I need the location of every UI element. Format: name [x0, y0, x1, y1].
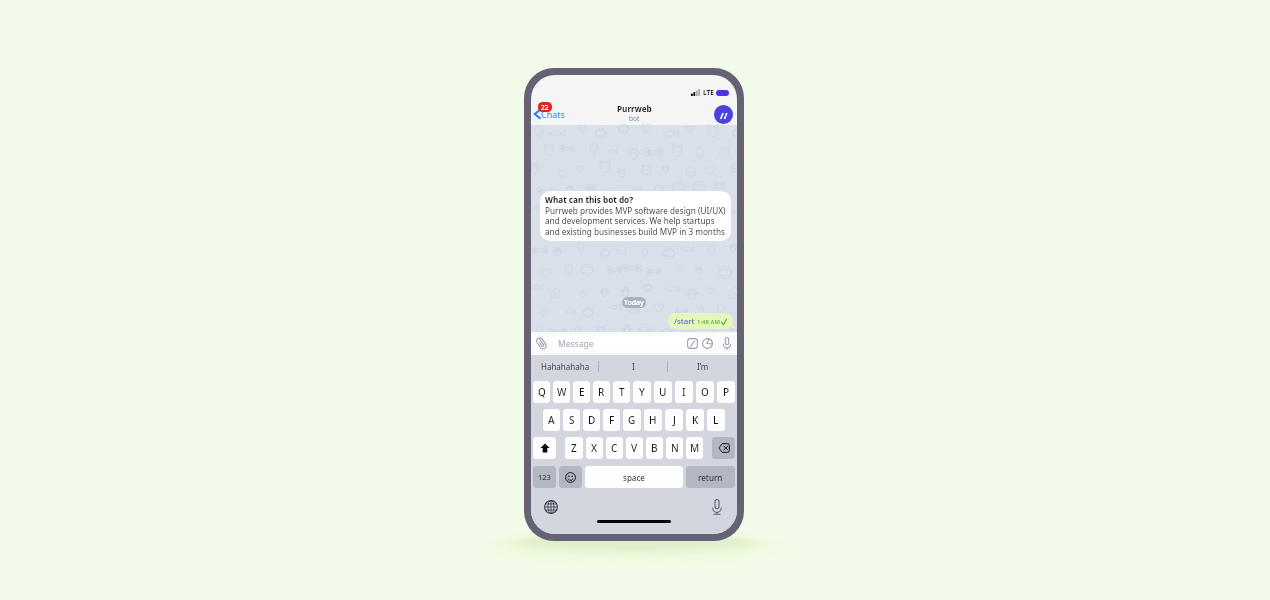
staticText: 22	[541, 103, 549, 112]
staticText: L	[713, 413, 719, 427]
staticText: /start	[674, 316, 695, 327]
staticText: Q	[538, 385, 546, 399]
button[interactable]: C	[606, 437, 623, 459]
button[interactable]: 123	[533, 466, 556, 488]
button[interactable]: Stickers	[702, 338, 713, 349]
button[interactable]: Backspace	[712, 437, 735, 459]
button[interactable]: N	[666, 437, 683, 459]
staticText: space	[623, 472, 645, 483]
button[interactable]: S	[563, 409, 580, 431]
button[interactable]: O	[696, 381, 714, 403]
staticText: Y	[639, 385, 645, 399]
staticText: N	[671, 441, 679, 455]
button[interactable]: U	[654, 381, 672, 403]
staticText: I	[632, 361, 635, 372]
button[interactable]: Hahahahaha	[531, 355, 599, 378]
staticText: Today	[624, 298, 644, 308]
staticText: 1:48 AM	[697, 318, 720, 326]
staticText: A	[548, 413, 555, 427]
button[interactable]: V	[626, 437, 643, 459]
button[interactable]: R	[593, 381, 610, 403]
button[interactable]: X	[586, 437, 603, 459]
staticText: P	[723, 385, 730, 399]
staticText: O	[701, 385, 709, 399]
button[interactable]: Chats	[534, 108, 565, 120]
button[interactable]: Shift	[533, 437, 556, 459]
staticText: Message	[558, 338, 594, 350]
button[interactable]: K	[686, 409, 704, 431]
staticText: K	[692, 413, 699, 427]
button[interactable]: D	[583, 409, 600, 431]
staticText: J	[673, 413, 676, 427]
staticText: E	[579, 385, 585, 399]
button[interactable]: I’m	[668, 355, 737, 378]
staticText: //	[720, 109, 728, 121]
button[interactable]: Emoji	[559, 466, 582, 488]
staticText: W	[557, 385, 567, 399]
staticText: What can this bot do?	[545, 194, 634, 205]
staticText: 123	[538, 472, 551, 482]
button[interactable]: M	[686, 437, 703, 459]
staticText: I	[682, 385, 686, 399]
button[interactable]: Q	[533, 381, 550, 403]
staticText: M	[690, 441, 700, 455]
staticText: Chats	[541, 108, 565, 120]
staticText: T	[619, 385, 625, 399]
button[interactable]: return	[686, 466, 735, 488]
button[interactable]: F	[603, 409, 620, 431]
button[interactable]: A	[543, 409, 560, 431]
button[interactable]: L	[707, 409, 725, 431]
button[interactable]: T	[613, 381, 630, 403]
staticText: X	[591, 441, 598, 455]
button[interactable]: Commands	[687, 338, 698, 349]
staticText: Purrweb	[617, 103, 652, 114]
button[interactable]: Attach	[534, 336, 549, 351]
button[interactable]: /start	[668, 313, 733, 329]
button[interactable]: Message	[551, 336, 715, 351]
button[interactable]: Y	[633, 381, 651, 403]
button[interactable]: P	[717, 381, 735, 403]
button[interactable]: J	[665, 409, 683, 431]
staticText: Hahahahaha	[541, 361, 590, 372]
staticText: U	[659, 385, 667, 399]
button[interactable]: E	[573, 381, 590, 403]
staticText: bot	[629, 114, 640, 123]
staticText: LTE	[703, 88, 714, 97]
staticText: S	[569, 413, 575, 427]
button[interactable]: Today	[622, 297, 646, 308]
button[interactable]: B	[646, 437, 663, 459]
button[interactable]: I	[599, 355, 668, 378]
button[interactable]: H	[644, 409, 662, 431]
button[interactable]: space	[585, 466, 683, 488]
button[interactable]: W	[553, 381, 570, 403]
staticText: I’m	[697, 361, 709, 372]
staticText: R	[598, 385, 605, 399]
button[interactable]: G	[623, 409, 641, 431]
button[interactable]: Profile	[714, 105, 733, 124]
staticText: C	[611, 441, 618, 455]
staticText: Z	[571, 441, 577, 455]
button[interactable]: Dictation	[712, 499, 722, 515]
staticText: D	[588, 413, 596, 427]
staticText: Purrweb provides MVP software design (UI…	[545, 205, 726, 238]
button[interactable]: Z	[565, 437, 583, 459]
button[interactable]: Voice message	[721, 336, 732, 350]
button[interactable]: I	[675, 381, 693, 403]
staticText: F	[609, 413, 615, 427]
button[interactable]: What can this bot do?	[545, 194, 727, 238]
staticText: return	[698, 472, 723, 483]
staticText: B	[651, 441, 658, 455]
button[interactable]: Change keyboard	[544, 500, 558, 514]
staticText: H	[649, 413, 657, 427]
staticText: V	[631, 441, 638, 455]
staticText: G	[628, 413, 636, 427]
